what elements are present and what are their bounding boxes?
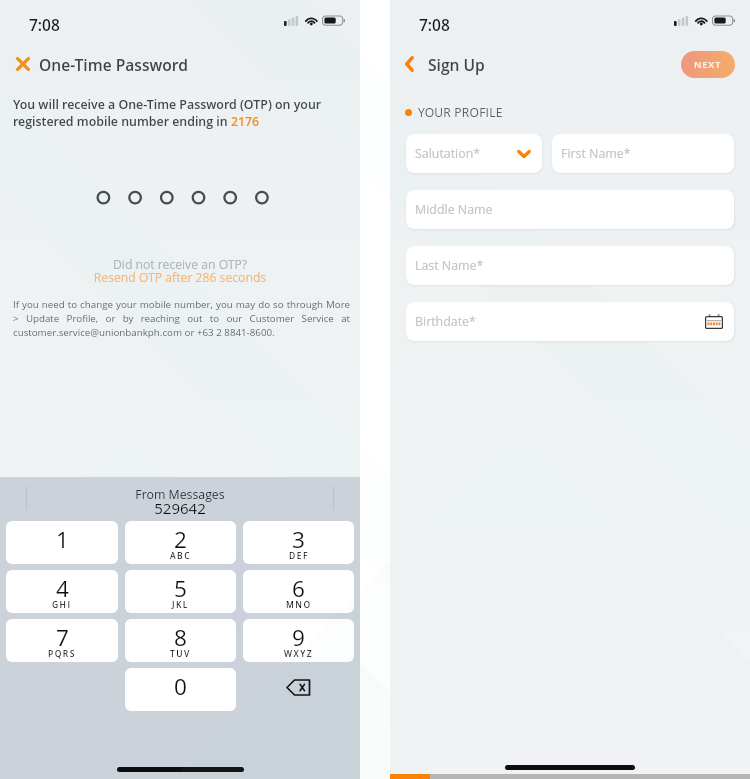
staticText: ABC <box>170 550 191 562</box>
button[interactable]: 2 <box>125 521 236 564</box>
staticText: 7:08 <box>419 14 450 35</box>
staticText: DEF <box>289 550 309 562</box>
staticText: Middle Name <box>415 201 493 218</box>
button[interactable]: 8 <box>125 619 236 662</box>
button[interactable]: 7 <box>6 619 118 662</box>
staticText: 7 <box>56 622 69 653</box>
button[interactable]: Did not receive an OTP? <box>0 256 360 286</box>
staticText: 2 <box>174 524 187 555</box>
button[interactable]: Back <box>397 52 421 76</box>
staticText: Sign Up <box>428 54 485 75</box>
button[interactable]: 9 <box>243 619 354 662</box>
button[interactable]: 3 <box>243 521 354 564</box>
staticText: 6 <box>292 573 305 604</box>
staticText: 1 <box>56 524 69 555</box>
staticText: TUV <box>170 648 191 660</box>
button[interactable]: First Name* <box>552 134 734 173</box>
button[interactable]: Middle Name <box>406 190 734 229</box>
staticText: From Messages <box>0 486 360 503</box>
other: Backspace <box>286 679 311 696</box>
staticText: 9 <box>292 622 305 653</box>
staticText: 8 <box>174 622 187 653</box>
button[interactable]: Last Name* <box>406 246 734 285</box>
staticText: 5 <box>174 573 187 604</box>
staticText: PQRS <box>48 648 76 660</box>
staticText: 4 <box>56 573 69 604</box>
staticText: 0 <box>174 671 187 702</box>
staticText: WXYZ <box>284 648 314 660</box>
button[interactable]: 4 <box>6 570 118 613</box>
button[interactable]: 0 <box>125 668 236 711</box>
staticText: One-Time Password <box>39 54 188 75</box>
staticText: Salutation* <box>415 145 481 162</box>
staticText: YOUR PROFILE <box>418 104 503 120</box>
button[interactable]: NEXT <box>681 51 735 78</box>
staticText: First Name* <box>561 145 631 162</box>
staticText: Resend OTP after 286 seconds <box>0 269 360 286</box>
staticText: 529642 <box>0 498 360 518</box>
button[interactable]: Birthdate* <box>406 302 734 341</box>
staticText: NEXT <box>694 58 722 71</box>
button[interactable]: 6 <box>243 570 354 613</box>
button[interactable]: Backspace <box>243 668 354 711</box>
staticText: JKL <box>172 599 189 611</box>
staticText: You will receive a One-Time Password (OT… <box>13 96 352 130</box>
staticText: Birthdate* <box>415 313 476 330</box>
other: Close <box>16 57 30 71</box>
staticText: If you need to change your mobile number… <box>13 298 350 339</box>
staticText: MNO <box>286 599 312 611</box>
staticText: 7:08 <box>29 14 60 35</box>
staticText: Did not receive an OTP? <box>0 256 360 273</box>
staticText: Last Name* <box>415 257 484 274</box>
staticText: GHI <box>52 599 72 611</box>
staticText: 3 <box>292 524 305 555</box>
button[interactable]: 1 <box>6 521 118 564</box>
other: Pick date <box>705 314 723 329</box>
button[interactable]: 5 <box>125 570 236 613</box>
button[interactable]: Salutation* <box>406 134 542 173</box>
button[interactable]: Close <box>0 52 360 76</box>
